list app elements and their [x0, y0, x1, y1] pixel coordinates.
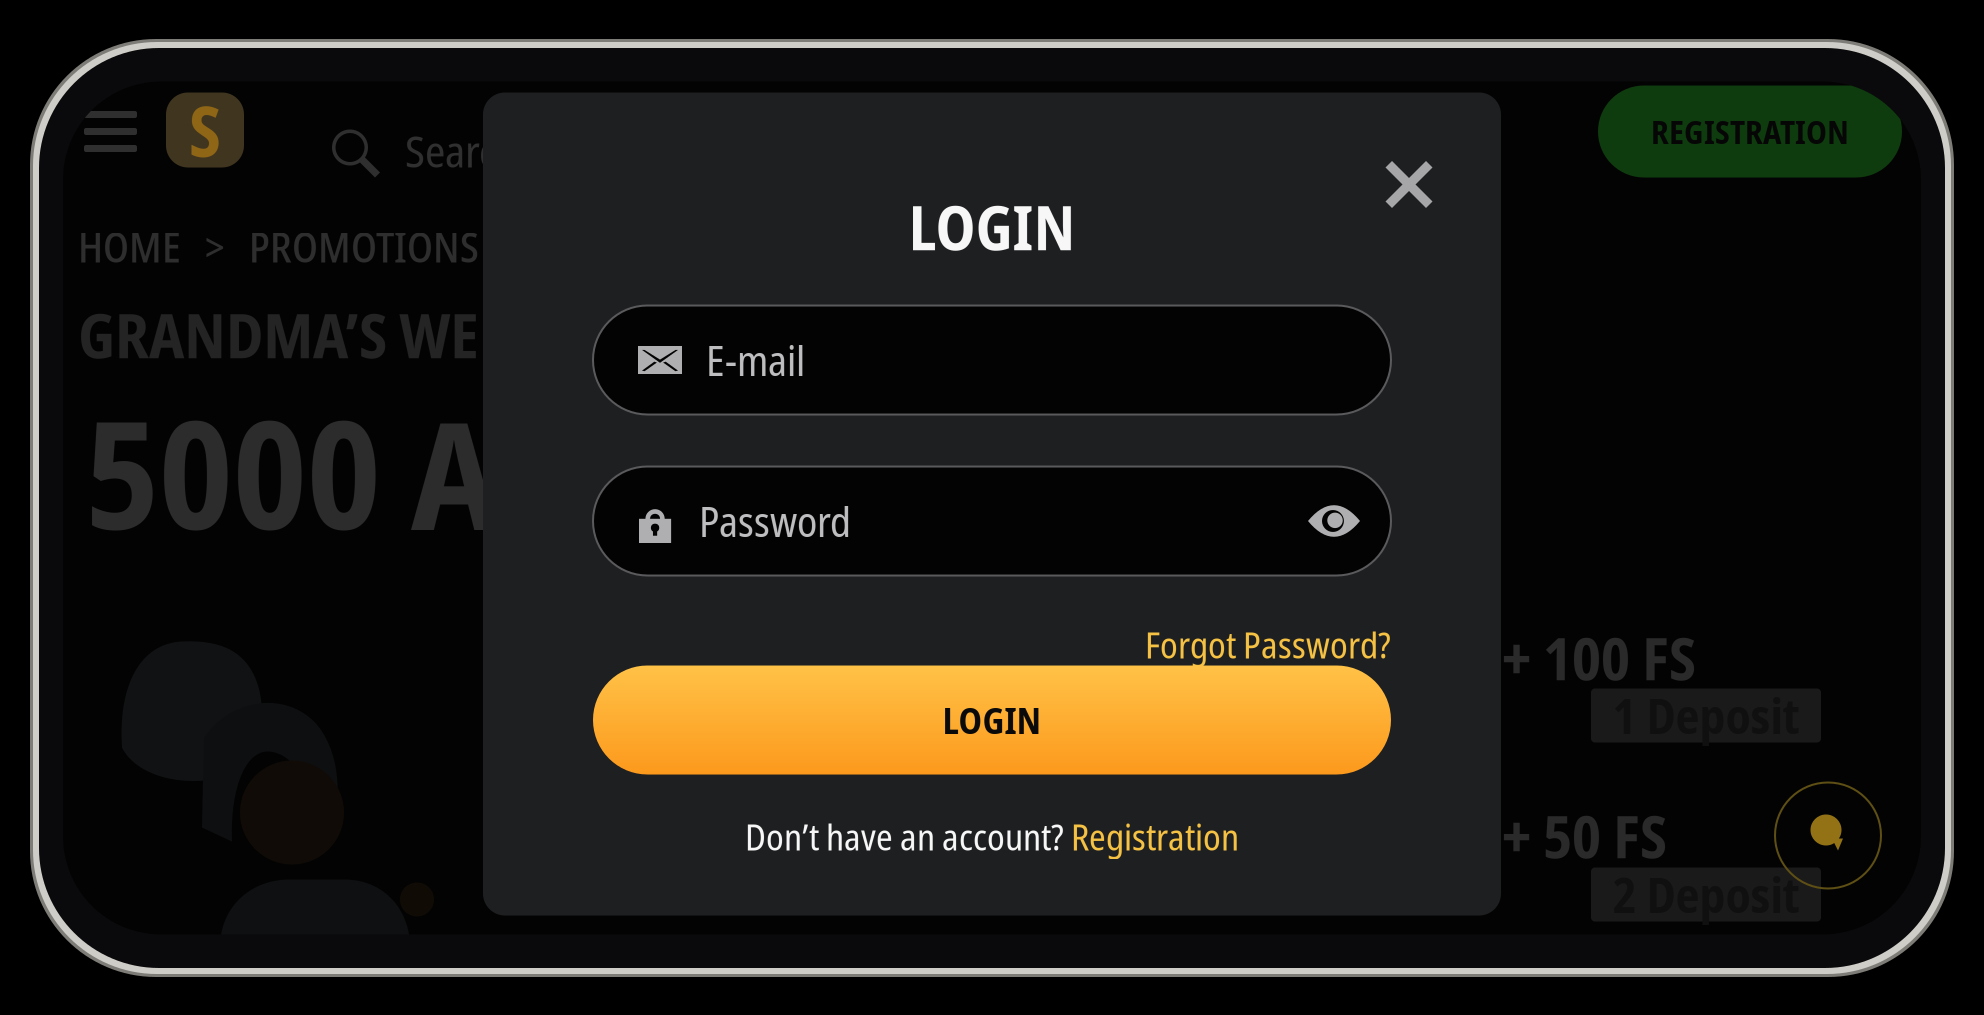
staticText: 1300 AUD + 50 FS: [1255, 795, 1667, 875]
button[interactable]: 1 Deposit: [1591, 688, 1821, 742]
button[interactable]: 2 Deposit: [1591, 867, 1821, 921]
button[interactable]: HOME: [78, 218, 181, 275]
button[interactable]: Menu: [72, 100, 149, 162]
staticText: LOGIN: [942, 695, 1041, 744]
staticText: S: [189, 83, 221, 177]
staticText: Registration: [1071, 812, 1239, 861]
staticText: LOGIN: [908, 185, 1075, 268]
staticText: E-mail: [706, 332, 805, 388]
staticText: REGISTRATION: [1651, 110, 1849, 153]
staticText: Don’t have an account?: [745, 812, 1071, 861]
button[interactable]: REGISTRATION: [1598, 85, 1902, 177]
staticText: HOME: [78, 218, 181, 275]
button[interactable]: Show password: [1297, 484, 1371, 558]
button[interactable]: LOGIN: [593, 665, 1391, 774]
button[interactable]: Registration: [1071, 812, 1239, 861]
staticText: GRANDMA’S WELCOME PACKAGE: [78, 293, 903, 376]
button[interactable]: Forgot Password?: [1145, 619, 1391, 669]
button[interactable]: Close: [1364, 139, 1454, 229]
staticText: >: [205, 218, 225, 275]
staticText: 1 Deposit: [1612, 683, 1799, 748]
staticText: 1500 AUD + 100 FS: [1255, 617, 1696, 697]
button[interactable]: PROMOTIONS: [249, 218, 479, 275]
staticText: Password: [699, 493, 851, 549]
button[interactable]: Support chat: [1773, 780, 1883, 890]
staticText: PROMOTIONS: [249, 218, 479, 275]
staticText: 2 Deposit: [1612, 862, 1799, 927]
staticText: Search: [405, 120, 518, 180]
staticText: Forgot Password?: [1145, 620, 1391, 669]
staticText: 5000 AUD + 200 FS: [85, 370, 1207, 573]
